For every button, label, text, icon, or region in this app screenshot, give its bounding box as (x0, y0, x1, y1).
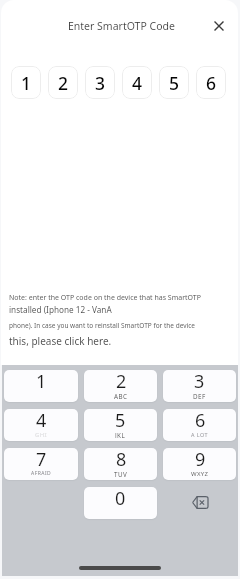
button[interactable]: 7 (4, 448, 78, 480)
button[interactable]: 2 (84, 370, 157, 402)
button[interactable]: 6 (163, 409, 236, 441)
button[interactable]: 4 (122, 66, 152, 99)
staticText: 1 (36, 370, 47, 394)
staticText: 3 (194, 370, 205, 394)
staticText: 2 (58, 71, 69, 95)
staticText: this, please click here. (9, 334, 112, 348)
staticText: A LOT (191, 431, 209, 438)
staticText: phone). In case you want to reinstall Sm… (9, 321, 195, 330)
staticText: JKL (115, 431, 126, 438)
staticText: Enter SmartOTP Code (68, 19, 175, 33)
staticText: 5 (169, 71, 180, 95)
staticText: 7 (36, 448, 47, 472)
button[interactable]: Backspace (185, 490, 215, 516)
staticText: WXYZ (191, 470, 209, 477)
button[interactable]: 5 (84, 409, 157, 441)
staticText: 6 (206, 71, 217, 95)
button[interactable]: 2 (48, 66, 78, 99)
staticText: 3 (95, 71, 106, 95)
button[interactable]: 3 (163, 370, 236, 402)
button[interactable]: 1 (4, 370, 78, 402)
staticText: TUV (114, 470, 128, 477)
button[interactable]: 0 (84, 487, 157, 519)
staticText: 9 (195, 448, 206, 472)
button[interactable]: 8 (84, 448, 157, 480)
staticText: GHI (35, 431, 48, 438)
staticText: Note: enter the OTP code on the device t… (9, 293, 201, 303)
staticText: 5 (115, 409, 126, 433)
button[interactable]: Close (206, 14, 230, 38)
staticText: DEF (193, 392, 206, 399)
staticText: 6 (195, 409, 206, 433)
staticText: 0 (115, 487, 126, 511)
staticText: 4 (132, 71, 143, 95)
staticText: AFRAID (31, 470, 52, 477)
staticText: 2 (116, 370, 127, 394)
staticText: 8 (116, 448, 127, 472)
staticText: 4 (36, 409, 47, 433)
button[interactable]: 4 (4, 409, 78, 441)
staticText: 1 (21, 71, 32, 95)
button[interactable]: 6 (196, 66, 226, 99)
staticText: ABC (114, 392, 128, 399)
staticText: installed (Iphone 12 - VanA (9, 304, 112, 315)
button[interactable]: 3 (85, 66, 115, 99)
button[interactable]: 5 (159, 66, 189, 99)
button[interactable]: 1 (11, 66, 41, 99)
button[interactable]: 9 (163, 448, 236, 480)
